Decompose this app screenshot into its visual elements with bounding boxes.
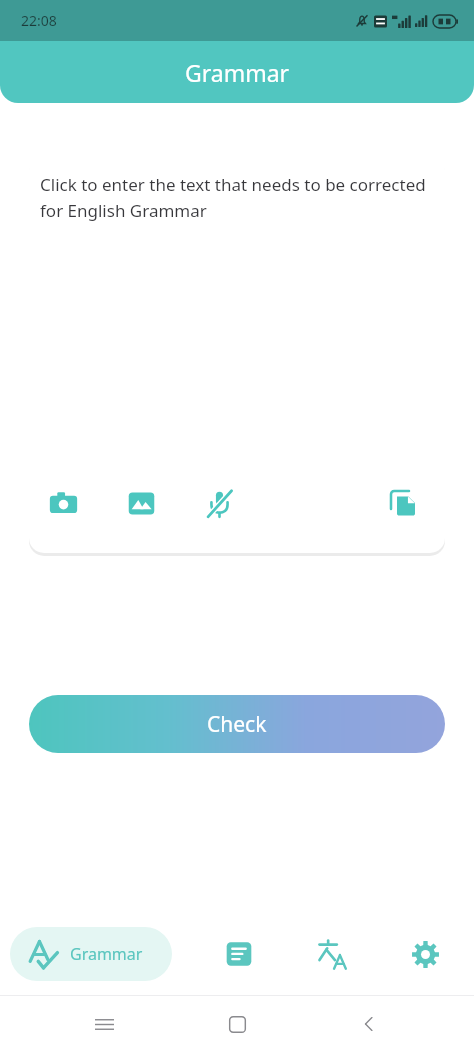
button[interactable]: Voice input muted — [199, 483, 239, 523]
button[interactable]: Recent apps — [80, 1000, 128, 1048]
button[interactable]: Click to enter the text that needs to be… — [29, 155, 445, 553]
button[interactable]: Paste from clipboard — [383, 483, 423, 523]
button[interactable]: Translate — [307, 929, 357, 979]
button[interactable]: Check — [29, 695, 445, 753]
staticText: Grammar — [70, 943, 143, 965]
staticText: Grammar — [185, 57, 290, 88]
staticText: Check — [207, 710, 267, 739]
button[interactable]: Settings — [400, 929, 450, 979]
staticText: 22:08 — [21, 11, 57, 30]
button[interactable]: Paraphrase — [214, 929, 264, 979]
button[interactable]: Take photo — [43, 483, 83, 523]
button[interactable]: Pick image — [121, 483, 161, 523]
button[interactable]: Back — [346, 1000, 394, 1048]
button[interactable]: Grammar — [10, 927, 172, 981]
button[interactable]: Home — [213, 1000, 261, 1048]
staticText: Click to enter the text that needs to be… — [40, 173, 431, 222]
